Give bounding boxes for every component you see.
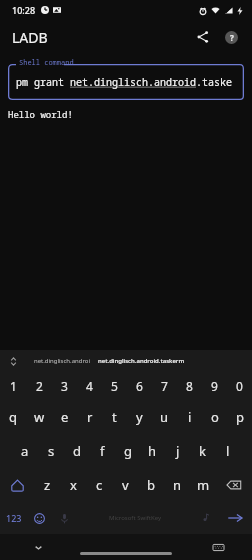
staticText: LADB [12,28,48,47]
staticText: 9 [211,378,218,394]
button[interactable]: Help [218,24,244,50]
staticText: 2 [36,378,43,394]
staticText: 6 [136,378,143,394]
button[interactable]: m [190,468,216,502]
button[interactable]: r [77,400,102,434]
button[interactable]: Shift [0,468,35,502]
staticText: q [9,408,17,426]
button[interactable]: l [215,434,240,468]
staticText: Microsoft SwiftKey [109,514,161,522]
staticText: k [199,442,206,460]
staticText: g [124,442,132,460]
button[interactable]: Switch keyboard [208,537,228,557]
button[interactable]: g [115,434,140,468]
staticText: net.dinglisch.android.taskerm [98,357,185,365]
button[interactable]: o [202,400,227,434]
staticText: j [176,442,180,460]
button[interactable]: i [177,400,202,434]
button[interactable]: d [64,434,90,468]
button[interactable]: net.dinglisch.android.taskerm [96,357,187,365]
button[interactable]: w [26,400,52,434]
button[interactable]: v [112,468,138,502]
button[interactable]: pm grant net.dinglisch.android.taske [8,64,244,100]
button[interactable]: c [86,468,112,502]
staticText: 3 [61,378,68,394]
button[interactable]: Backspace [216,468,252,502]
staticText: 4 [86,378,93,394]
button[interactable]: n [164,468,190,502]
button[interactable]: net.dinglisch.androi [32,357,92,365]
button[interactable]: u [152,400,177,434]
staticText: ? [230,32,234,43]
staticText: 0 [236,378,243,394]
staticText: Hello world! [8,108,73,120]
button[interactable]: j [165,434,190,468]
staticText: z [44,476,51,494]
button[interactable]: s [38,434,64,468]
staticText: n [173,476,182,494]
button[interactable]: q [0,400,26,434]
button[interactable]: p [227,400,252,434]
button[interactable]: Emoji [27,502,52,534]
button[interactable]: t [102,400,127,434]
staticText: w [34,408,45,426]
staticText: 1 [10,378,17,394]
staticText: o [211,408,219,426]
staticText: l [226,442,230,460]
staticText: u [160,408,169,426]
staticText: 10:28 [12,4,36,16]
staticText: r [87,408,93,426]
staticText: b [147,476,155,494]
button[interactable]: 1 [0,372,26,400]
button[interactable]: z [35,468,60,502]
staticText: s [48,442,55,460]
button[interactable]: 9 [202,372,227,400]
button[interactable]: 3 [52,372,77,400]
staticText: c [96,476,103,494]
staticText: h [148,442,157,460]
staticText: pm grant net.dinglisch.android.taske [16,75,232,89]
staticText: d [73,442,81,460]
button[interactable]: Share [190,24,216,50]
staticText: m [197,476,210,494]
staticText: t [112,408,117,426]
staticText: 8 [186,378,193,394]
staticText: e [61,408,69,426]
staticText: f [100,442,105,460]
button[interactable]: a [12,434,38,468]
staticText: 123 [6,512,22,524]
button[interactable]: 2 [26,372,52,400]
button[interactable]: Space [77,502,192,534]
button[interactable]: Back [28,537,48,557]
button[interactable]: 4 [77,372,102,400]
button[interactable]: h [140,434,165,468]
button[interactable]: f [90,434,115,468]
staticText: i [188,408,192,426]
button[interactable]: 8 [177,372,202,400]
staticText: p [236,408,244,426]
staticText: a [21,442,29,460]
button[interactable]: Symbols [192,502,217,534]
button[interactable]: k [190,434,215,468]
staticText: Shell command [19,58,74,68]
button[interactable]: 123 [0,502,27,534]
staticText: y [136,408,143,426]
button[interactable]: Enter [217,502,252,534]
staticText: 5 [111,378,118,394]
staticText: v [122,476,129,494]
button[interactable]: 6 [127,372,152,400]
button[interactable]: 7 [152,372,177,400]
button[interactable]: Expand suggestions [4,352,22,370]
button[interactable]: e [52,400,77,434]
button[interactable]: x [60,468,86,502]
button[interactable]: 0 [227,372,252,400]
staticText: 7 [161,378,168,394]
staticText: x [70,476,77,494]
button[interactable]: 5 [102,372,127,400]
button[interactable]: Voice input [52,502,77,534]
staticText: net.dinglisch.androi [34,357,90,365]
button[interactable]: y [127,400,152,434]
button[interactable]: b [138,468,164,502]
